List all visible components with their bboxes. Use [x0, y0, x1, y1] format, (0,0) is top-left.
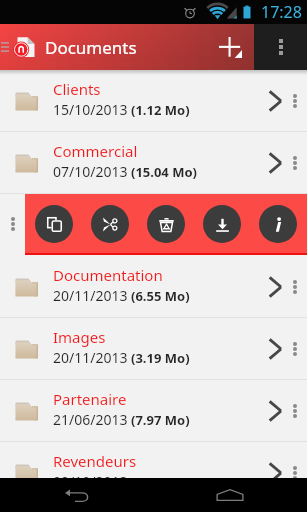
button[interactable]: Item menu — [282, 132, 307, 194]
staticText: 09/10/2013 — [53, 472, 128, 491]
staticText: Documentation — [53, 265, 163, 285]
staticText: Partenaire — [53, 389, 127, 409]
staticText: 17:28 — [261, 1, 302, 23]
staticText: (7.97 Mo) — [131, 411, 190, 429]
staticText: 15/10/2013 — [53, 100, 128, 119]
staticText: (2.30 Mo) — [131, 473, 190, 491]
staticText: 07/10/2013 — [53, 162, 128, 181]
button[interactable]: Item menu — [282, 256, 307, 318]
button[interactable]: Navigation drawer — [0, 24, 13, 70]
button[interactable]: Documentation — [0, 256, 307, 318]
button[interactable]: Info — [259, 205, 297, 243]
button[interactable]: Item menu — [282, 442, 307, 504]
button[interactable]: Copy — [35, 205, 73, 243]
staticText: Commercial — [53, 141, 138, 161]
staticText: Documents — [45, 36, 137, 59]
button[interactable]: Cut — [91, 205, 129, 243]
staticText: (1.12 Mo) — [131, 101, 190, 119]
button[interactable]: Add — [206, 24, 254, 70]
staticText: Revendeurs — [53, 451, 137, 471]
button[interactable]: Clients — [0, 70, 307, 132]
button[interactable]: Partenaire — [0, 380, 307, 442]
button[interactable]: Item menu — [282, 380, 307, 442]
staticText: 20/11/2013 — [53, 286, 128, 305]
button[interactable]: Item menu — [282, 70, 307, 132]
button[interactable]: Back — [52, 478, 102, 512]
button[interactable]: Open — [256, 318, 282, 380]
button[interactable]: Revendeurs — [0, 442, 307, 504]
button[interactable]: Item menu — [282, 318, 307, 380]
button[interactable]: Images — [0, 318, 307, 380]
button[interactable]: Open — [256, 442, 282, 504]
button[interactable]: Item menu — [0, 194, 25, 256]
staticText: (6.55 Mo) — [131, 287, 190, 305]
button[interactable]: Open — [256, 132, 282, 194]
staticText: 21/06/2013 — [53, 410, 128, 429]
staticText: (3.19 Mo) — [131, 349, 190, 367]
button[interactable]: Download — [203, 205, 241, 243]
button[interactable]: More options — [254, 24, 307, 70]
button[interactable]: Open — [256, 70, 282, 132]
button[interactable]: Open — [256, 256, 282, 318]
button[interactable]: Commercial — [0, 132, 307, 194]
staticText: 20/11/2013 — [53, 348, 128, 367]
staticText: Clients — [53, 79, 101, 99]
staticText: Images — [53, 327, 106, 347]
button[interactable]: Open — [256, 380, 282, 442]
staticText: (15.04 Mo) — [131, 163, 197, 181]
button[interactable]: Delete — [147, 205, 185, 243]
button[interactable]: Home — [205, 478, 255, 512]
